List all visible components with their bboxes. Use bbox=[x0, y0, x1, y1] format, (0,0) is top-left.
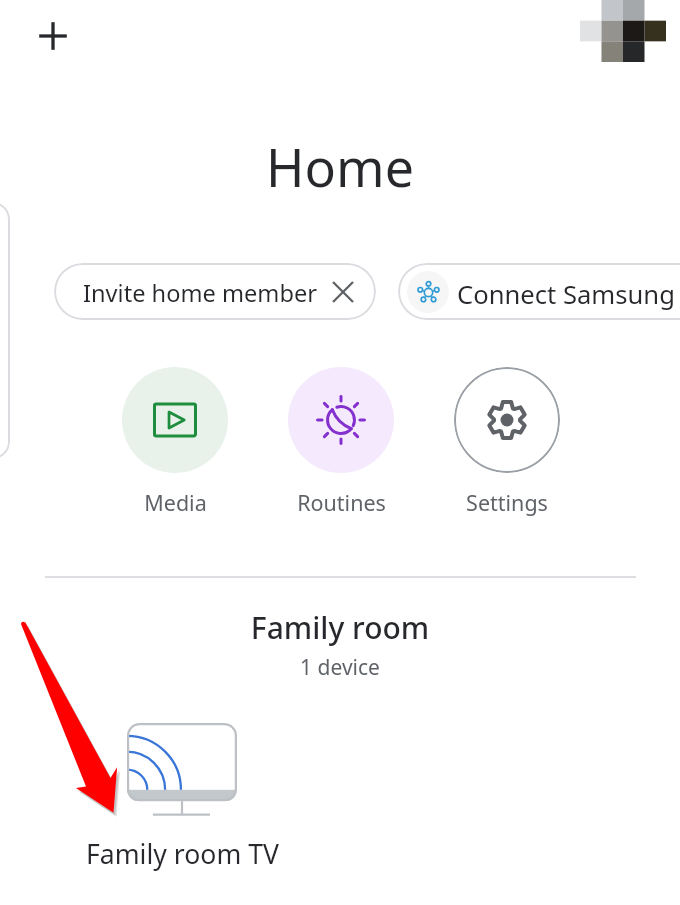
button[interactable]: Routines bbox=[288, 367, 394, 517]
button[interactable]: Add bbox=[29, 12, 77, 60]
staticText: Family room TV bbox=[86, 836, 279, 872]
staticText: Settings bbox=[466, 488, 548, 517]
staticText: 1 device bbox=[0, 653, 680, 682]
button[interactable]: Media bbox=[122, 367, 228, 517]
button[interactable]: Family room TV bbox=[80, 715, 273, 872]
button[interactable]: Profile bbox=[580, 0, 666, 62]
button[interactable]: Settings bbox=[454, 367, 560, 517]
staticText: Routines bbox=[297, 488, 386, 517]
staticText: Connect Samsung bbox=[457, 277, 675, 312]
button[interactable]: Invite home member bbox=[54, 263, 376, 320]
staticText: Invite home member bbox=[83, 277, 317, 309]
button[interactable]: Dismiss invite home member bbox=[319, 268, 367, 316]
staticText: Family room bbox=[0, 607, 680, 648]
staticText: Media bbox=[144, 488, 207, 517]
button[interactable] bbox=[0, 202, 10, 459]
button[interactable]: Connect Samsung bbox=[398, 263, 680, 320]
staticText: Home bbox=[0, 131, 680, 202]
